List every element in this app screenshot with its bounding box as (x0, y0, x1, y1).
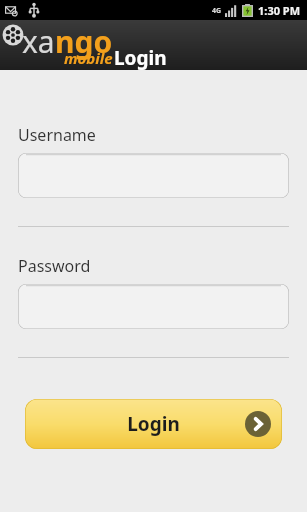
button[interactable]: Login (25, 399, 282, 449)
staticText: 1:30 PM (258, 3, 301, 18)
staticText: mobile (64, 48, 113, 68)
staticText: ngo (55, 21, 113, 62)
staticText: Login (114, 45, 167, 71)
staticText: Username (18, 124, 96, 146)
staticText: 4G (212, 6, 222, 16)
staticText: xa (22, 21, 55, 62)
other: Submit login (245, 411, 271, 437)
button[interactable] (18, 284, 289, 329)
button[interactable] (18, 153, 289, 198)
staticText: Password (18, 255, 91, 277)
staticText: Login (127, 411, 180, 437)
